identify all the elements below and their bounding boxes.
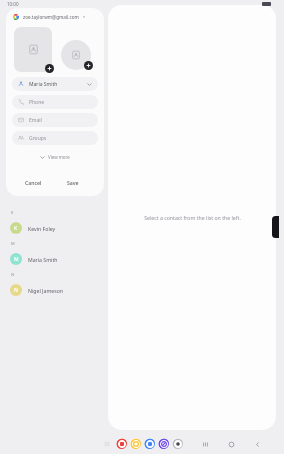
button[interactable]: Cancel <box>20 177 47 188</box>
button[interactable]: zoe.taylorwm@gmail.com <box>6 8 104 25</box>
staticText: Groups <box>29 135 47 142</box>
staticText: Email <box>29 117 42 124</box>
staticText: Maria Smith <box>28 256 58 263</box>
button[interactable]: Email <box>12 113 98 127</box>
button[interactable]: Drive <box>144 438 155 449</box>
button[interactable]: Back <box>254 441 261 448</box>
button[interactable]: M <box>0 248 104 270</box>
button[interactable]: Maria Smith <box>12 77 98 91</box>
button[interactable]: Groups <box>12 131 98 145</box>
button[interactable]: Gmail <box>116 438 127 449</box>
button[interactable]: Photos <box>130 438 141 449</box>
staticText: N <box>11 272 15 277</box>
staticText: Nigel Jameson <box>28 287 64 294</box>
staticText: M <box>14 256 19 263</box>
button[interactable]: Add photo <box>14 27 52 72</box>
staticText: View more <box>48 154 70 160</box>
button[interactable]: All apps <box>104 441 110 447</box>
button[interactable]: View more <box>34 152 76 162</box>
button[interactable]: Save <box>62 177 84 188</box>
button[interactable]: Chrome <box>158 438 169 449</box>
staticText: K <box>14 225 18 232</box>
button[interactable]: N <box>0 279 104 301</box>
staticText: N <box>14 287 18 294</box>
button[interactable]: Recent apps <box>202 441 209 448</box>
staticText: Cancel <box>25 179 42 186</box>
button[interactable]: Phone <box>12 95 98 109</box>
staticText: K <box>11 210 14 215</box>
button[interactable]: Add <box>45 64 54 73</box>
button[interactable]: Add <box>84 61 93 70</box>
staticText: 10:00 <box>7 1 19 7</box>
staticText: Select a contact from the list on the le… <box>144 214 241 221</box>
staticText: Save <box>67 179 79 186</box>
staticText: Kevin Foley <box>28 225 56 232</box>
button[interactable]: K <box>0 217 104 239</box>
staticText: M <box>11 241 15 246</box>
button[interactable]: Drag handle <box>272 216 279 238</box>
button[interactable]: Home <box>228 441 235 448</box>
button[interactable]: Camera <box>172 438 183 449</box>
staticText: Phone <box>29 99 45 106</box>
staticText: zoe.taylorwm@gmail.com <box>23 14 79 20</box>
staticText: Maria Smith <box>29 81 58 88</box>
button[interactable]: Add profile photo <box>61 40 91 70</box>
